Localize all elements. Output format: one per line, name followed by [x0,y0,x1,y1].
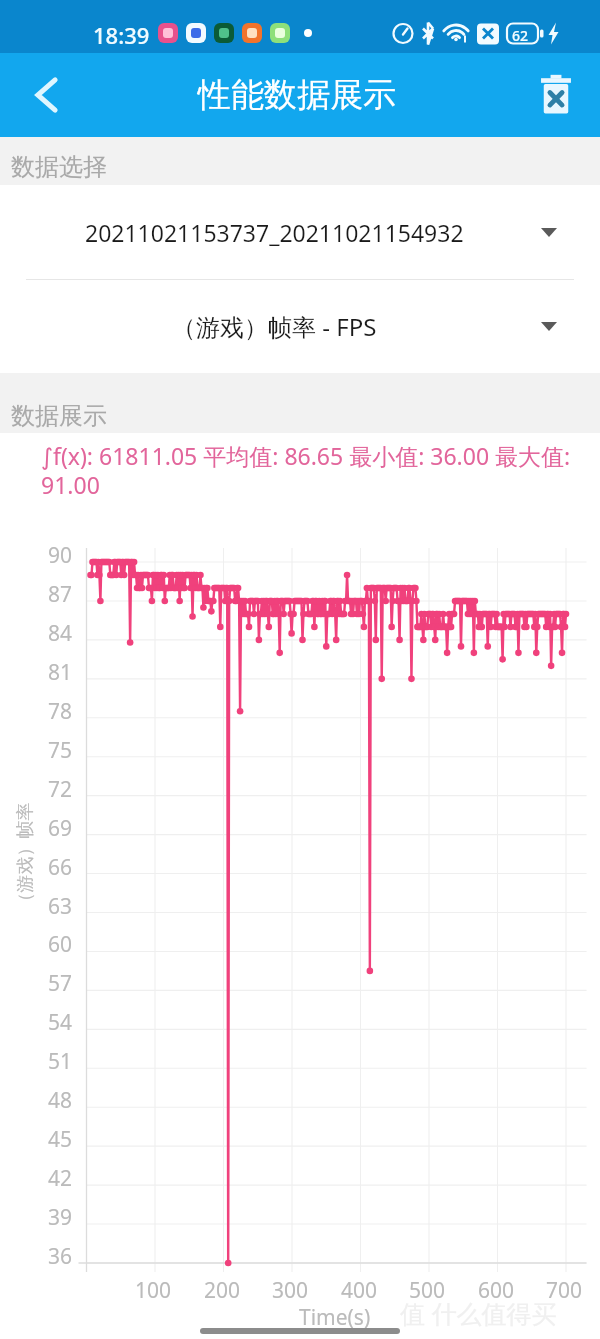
staticText: 45 [48,1125,73,1154]
staticText: 42 [48,1164,73,1193]
staticText: 48 [48,1086,73,1115]
staticText: 36 [48,1242,73,1271]
button[interactable]: 20211021153737_20211021154932 [0,185,600,279]
button[interactable]: （游戏）帧率 - FPS [0,280,600,373]
staticText: 值 什么值得买 [400,1296,557,1330]
staticText: 数据选择 [11,152,107,182]
staticText: 300 [272,1276,309,1305]
staticText: 63 [48,892,73,921]
staticText: 700 [546,1276,583,1305]
staticText: 69 [48,814,73,843]
staticText: 78 [48,697,73,726]
staticText: Time(s) [299,1303,371,1332]
staticText: 性能数据展示 [198,74,396,116]
staticText: 39 [48,1203,73,1232]
staticText: 600 [478,1276,515,1305]
staticText: 87 [48,580,73,609]
staticText: （游戏）帧率() [13,795,37,910]
staticText: 500 [409,1276,446,1305]
staticText: 51 [48,1047,73,1076]
staticText: 数据展示 [11,401,107,431]
staticText: 18:39 [93,20,150,50]
staticText: π [122,39,166,75]
staticText: 75 [48,736,73,765]
staticText: 57 [48,969,73,998]
staticText: 100 [135,1276,172,1305]
staticText: 84 [48,619,73,648]
staticText: 54 [48,1008,73,1037]
button[interactable]: 返回 [22,53,70,137]
staticText: 20211021153737_20211021154932 [85,217,464,248]
staticText: 62 [512,26,529,45]
staticText: 72 [48,775,73,804]
staticText: ∫f(x): 61811.05 平均值: 86.65 最小值: 36.00 最大… [41,440,574,497]
staticText: 200 [204,1276,241,1305]
staticText: 81 [48,658,73,687]
button[interactable]: 删除 [528,67,584,123]
staticText: 90 [48,541,73,570]
staticText: 66 [48,853,73,882]
staticText: 400 [341,1276,378,1305]
staticText: （游戏）帧率 - FPS [172,310,377,343]
staticText: 60 [48,930,73,959]
staticText: π [139,39,183,75]
